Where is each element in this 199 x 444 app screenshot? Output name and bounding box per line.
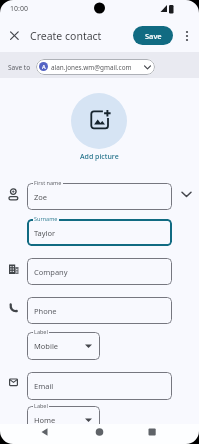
staticText: Phone <box>34 306 57 316</box>
staticText: Create contact <box>30 29 102 43</box>
staticText: alan.jones.wm@gmail.com <box>51 63 132 72</box>
staticText: Email <box>34 381 54 391</box>
staticText: Label <box>34 328 48 335</box>
button[interactable]: Mobile <box>27 332 100 360</box>
button[interactable]: A <box>36 59 155 75</box>
button[interactable] <box>6 27 23 44</box>
staticText: Save <box>145 31 162 41</box>
button[interactable]: Company <box>27 258 172 285</box>
staticText: Add picture <box>80 152 119 162</box>
staticText: 10:00 <box>10 4 28 14</box>
button[interactable]: Email <box>27 372 172 400</box>
staticText: Home <box>34 415 56 425</box>
button[interactable] <box>0 424 199 444</box>
staticText: Taylor <box>34 228 56 238</box>
button[interactable] <box>181 27 193 44</box>
staticText: A <box>42 63 46 70</box>
button[interactable]: Zoe <box>27 183 172 210</box>
button[interactable]: Save <box>133 26 173 45</box>
button[interactable]: Taylor <box>27 219 172 246</box>
button[interactable] <box>71 93 127 149</box>
staticText: Mobile <box>34 341 59 351</box>
staticText: First name <box>34 179 62 186</box>
button[interactable]: Phone <box>27 297 172 324</box>
staticText: Label <box>34 402 48 409</box>
staticText: Save to <box>8 63 31 72</box>
staticText: Zoe <box>34 192 48 202</box>
button[interactable]: Home <box>27 406 100 433</box>
staticText: Surname <box>34 215 58 222</box>
staticText: Company <box>34 267 68 277</box>
